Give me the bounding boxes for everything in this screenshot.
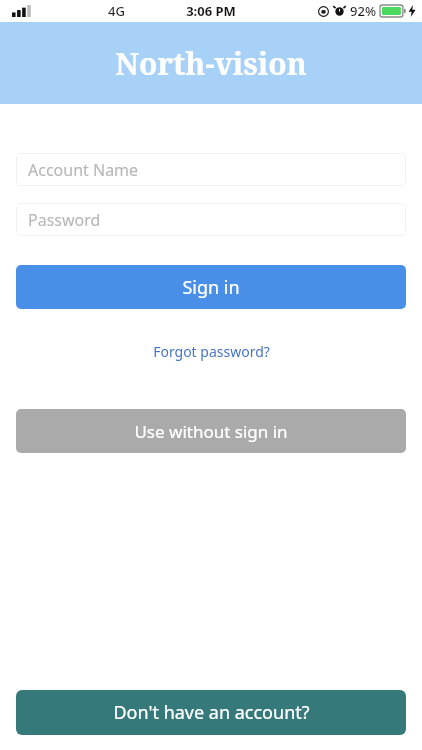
staticText: Don't have an account? (113, 700, 310, 725)
staticText: 4G (108, 2, 125, 20)
staticText: Password (28, 209, 101, 231)
button[interactable]: Sign in (16, 265, 406, 309)
button[interactable]: Use without sign in (16, 409, 406, 453)
staticText: Forgot password? (153, 342, 270, 361)
button[interactable]: Password (16, 203, 406, 236)
staticText: 92% (350, 2, 376, 20)
staticText: 3:06 PM (186, 2, 236, 20)
staticText: Account Name (28, 159, 139, 181)
staticText: North-vision (115, 43, 307, 84)
button[interactable]: Forgot password? (0, 337, 422, 366)
button[interactable]: Account Name (16, 153, 406, 186)
staticText: Sign in (182, 275, 240, 300)
staticText: Use without sign in (134, 420, 288, 443)
button[interactable]: Don't have an account? (16, 690, 406, 735)
